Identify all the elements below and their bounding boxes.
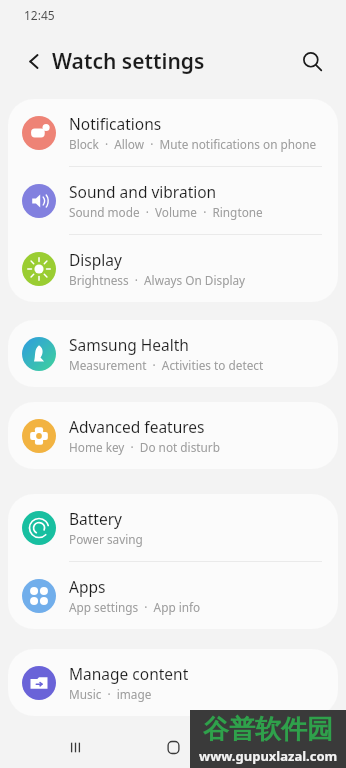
button[interactable]: Sound and vibration <box>8 167 338 234</box>
button[interactable]: Battery <box>8 494 338 561</box>
staticText: Watch settings <box>52 47 205 76</box>
staticText: Samsung Health <box>69 334 189 355</box>
staticText: Sound and vibration <box>69 181 217 202</box>
staticText: Measurement · Activities to detect <box>69 357 264 373</box>
button[interactable]: Recents <box>58 730 92 764</box>
button[interactable]: Notifications <box>8 99 338 166</box>
button[interactable]: Back <box>14 41 54 81</box>
staticText: Home key · Do not disturb <box>69 439 220 455</box>
staticText: Music · image <box>69 686 152 702</box>
button[interactable]: Advanced features <box>8 402 338 469</box>
staticText: www.gupuxlazal.com <box>199 747 338 765</box>
staticText: Notifications <box>69 113 162 134</box>
staticText: Display <box>69 249 122 270</box>
staticText: Battery <box>69 508 123 529</box>
staticText: Block · Allow · Mute notifications on ph… <box>69 136 317 152</box>
staticText: Power saving <box>69 531 143 547</box>
staticText: Brightness · Always On Display <box>69 272 246 288</box>
button[interactable]: Display <box>8 235 338 302</box>
staticText: 12:45 <box>24 7 55 23</box>
button[interactable]: Apps <box>8 562 338 629</box>
button[interactable]: Samsung Health <box>8 320 338 387</box>
staticText: Apps <box>69 576 106 597</box>
button[interactable]: Manage content <box>8 649 338 716</box>
staticText: App settings · App info <box>69 599 201 615</box>
staticText: Manage content <box>69 663 189 684</box>
staticText: Advanced features <box>69 416 205 437</box>
button[interactable]: Search <box>292 41 332 81</box>
staticText: Sound mode · Volume · Ringtone <box>69 204 263 220</box>
staticText: 谷普软件园 <box>203 713 333 746</box>
button[interactable]: Home <box>156 730 190 764</box>
